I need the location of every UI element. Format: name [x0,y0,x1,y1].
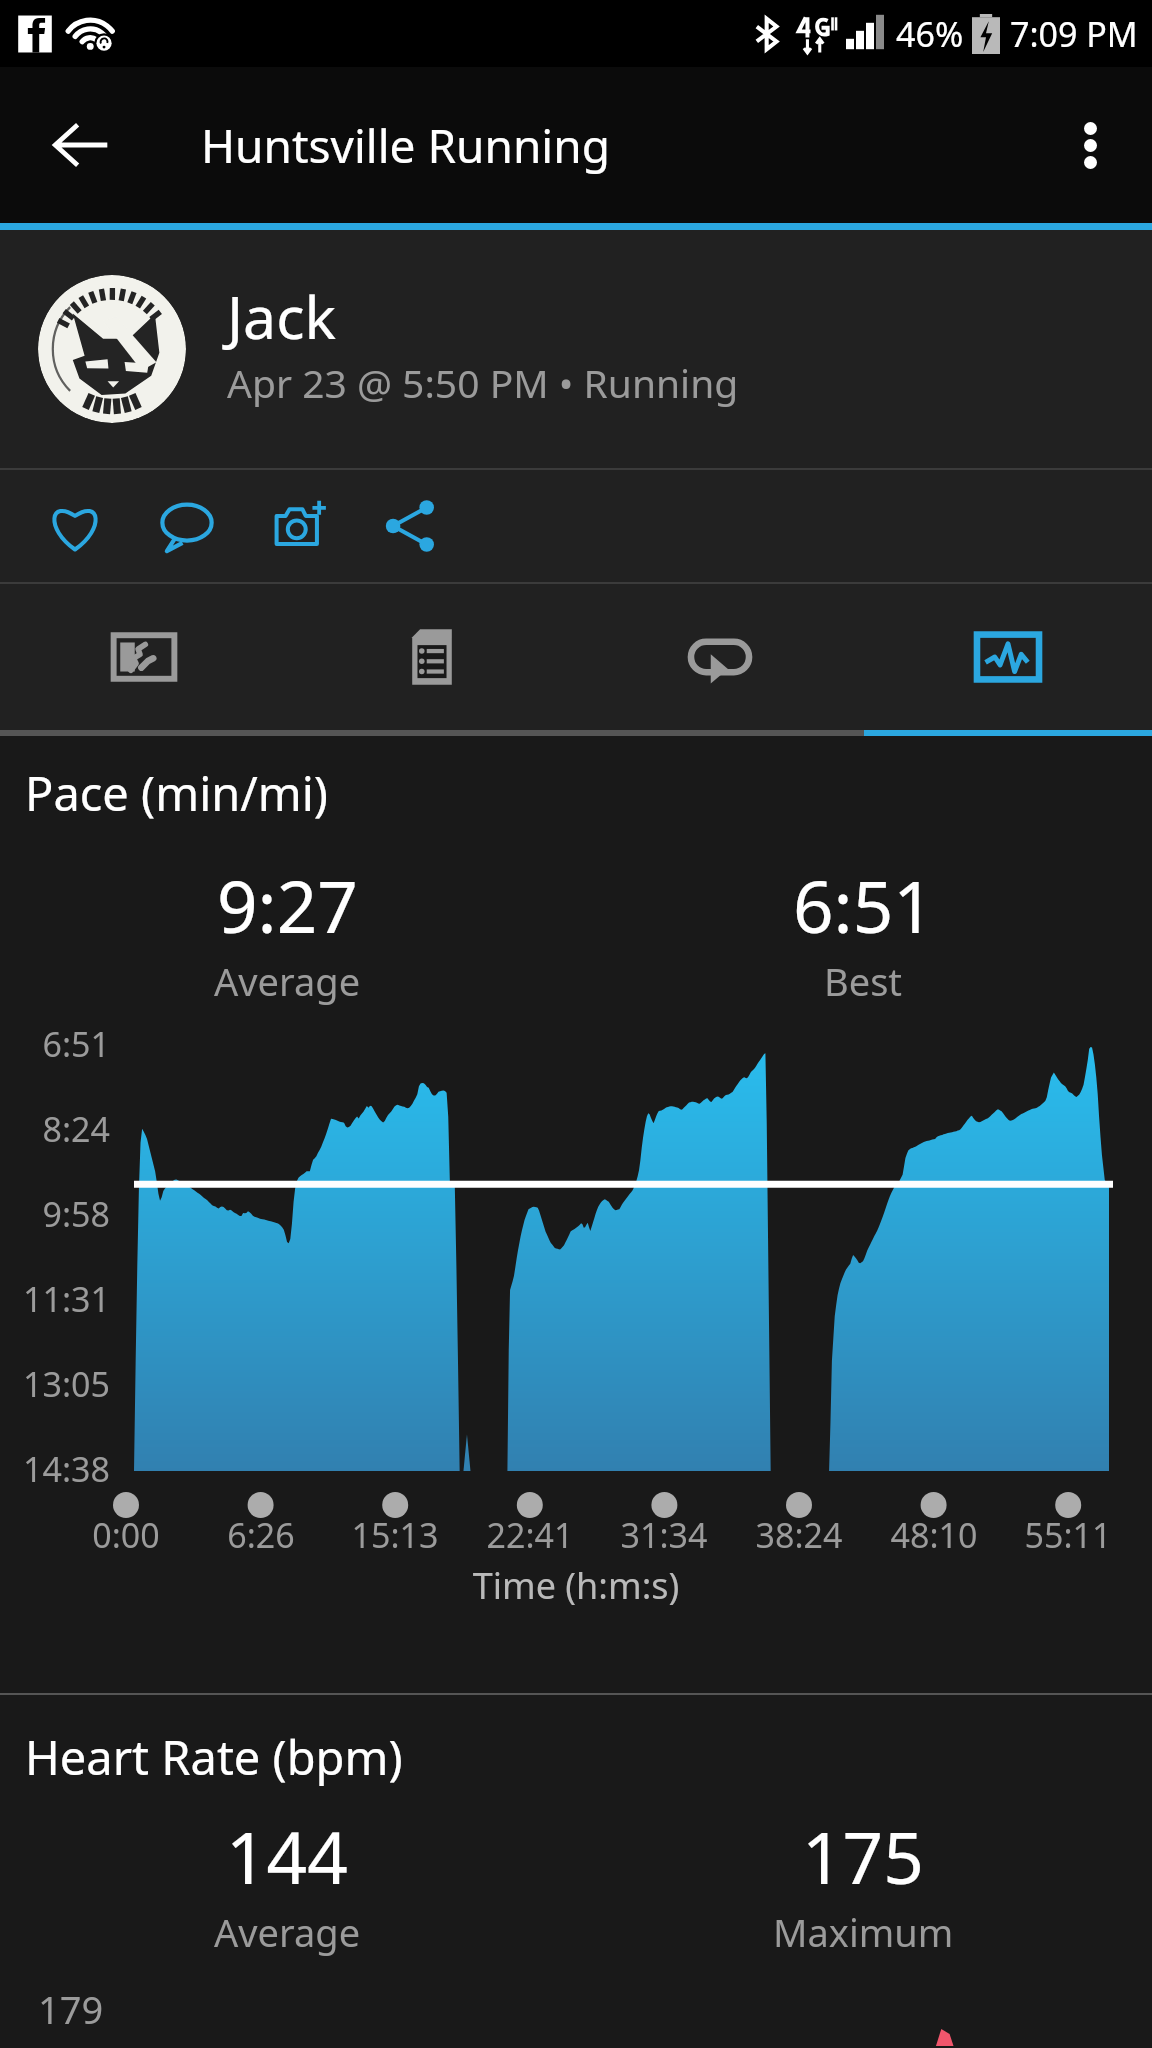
button[interactable]: Share [355,470,467,582]
button[interactable]: Details [288,584,576,730]
staticText: 13:05 [0,1361,110,1407]
staticText: Average [214,1906,361,1958]
staticText: 6:51 [0,1021,110,1067]
staticText: 15:13 [325,1512,465,1558]
staticText: 46% [896,11,964,57]
staticText: Jack [227,276,337,356]
staticText: 6:51 [793,857,934,954]
button[interactable]: Laps [576,584,864,730]
staticText: 38:24 [729,1512,869,1558]
button[interactable]: Jack [0,230,1152,468]
staticText: 7:09 PM [1010,11,1138,57]
staticText: 0:00 [56,1512,196,1558]
staticText: 8:24 [0,1106,110,1152]
staticText: 14:38 [0,1446,110,1492]
staticText: 22:41 [460,1512,600,1558]
staticText: 6:26 [191,1512,331,1558]
button[interactable]: Charts [864,584,1152,730]
staticText: Maximum [773,1906,954,1958]
button[interactable]: Like [19,470,131,582]
button[interactable]: Navigate up [0,67,161,223]
staticText: 48:10 [864,1512,1004,1558]
staticText: 175 [802,1808,924,1905]
staticText: 31:34 [594,1512,734,1558]
staticText: 11:31 [0,1276,110,1322]
button[interactable]: Comment [131,470,243,582]
button[interactable]: More options [1028,67,1152,223]
staticText: Pace (min/mi) [25,761,328,825]
staticText: 55:11 [998,1512,1138,1558]
staticText: Best [824,955,903,1007]
staticText: Apr 23 @ 5:50 PM • Running [227,356,739,409]
button[interactable]: Map [0,584,288,730]
staticText: 179 [38,1983,104,2035]
staticText: Heart Rate (bpm) [25,1725,403,1789]
staticText: Average [214,955,361,1007]
staticText: 144 [226,1808,348,1905]
staticText: Time (h:m:s) [0,1561,1152,1610]
button[interactable]: Add photo [243,470,355,582]
staticText: Huntsville Running [201,114,610,177]
staticText: 9:58 [0,1191,110,1237]
staticText: 9:27 [217,857,358,954]
